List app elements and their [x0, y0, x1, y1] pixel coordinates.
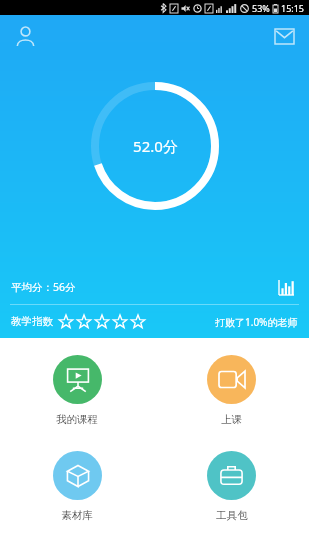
button[interactable]: 工具包	[154, 449, 309, 524]
staticText: 工具包	[216, 509, 248, 522]
button[interactable]: 上课	[154, 353, 309, 428]
staticText: 我的课程	[56, 413, 98, 426]
staticText: 教学指数	[11, 315, 53, 328]
button[interactable]: Statistics	[274, 275, 298, 299]
staticText: 平均分：56分	[11, 280, 76, 294]
staticText: 53%	[252, 2, 270, 14]
staticText: 52.0分	[133, 136, 178, 156]
staticText: 上课	[221, 413, 242, 426]
staticText: 打败了1.0%的老师	[215, 315, 298, 329]
button[interactable]: 素材库	[0, 449, 154, 524]
button[interactable]: 我的课程	[0, 353, 154, 428]
staticText: 素材库	[61, 509, 93, 522]
button[interactable]: Profile	[8, 19, 42, 53]
staticText: 15:15	[281, 2, 305, 14]
button[interactable]: Messages	[267, 19, 301, 53]
